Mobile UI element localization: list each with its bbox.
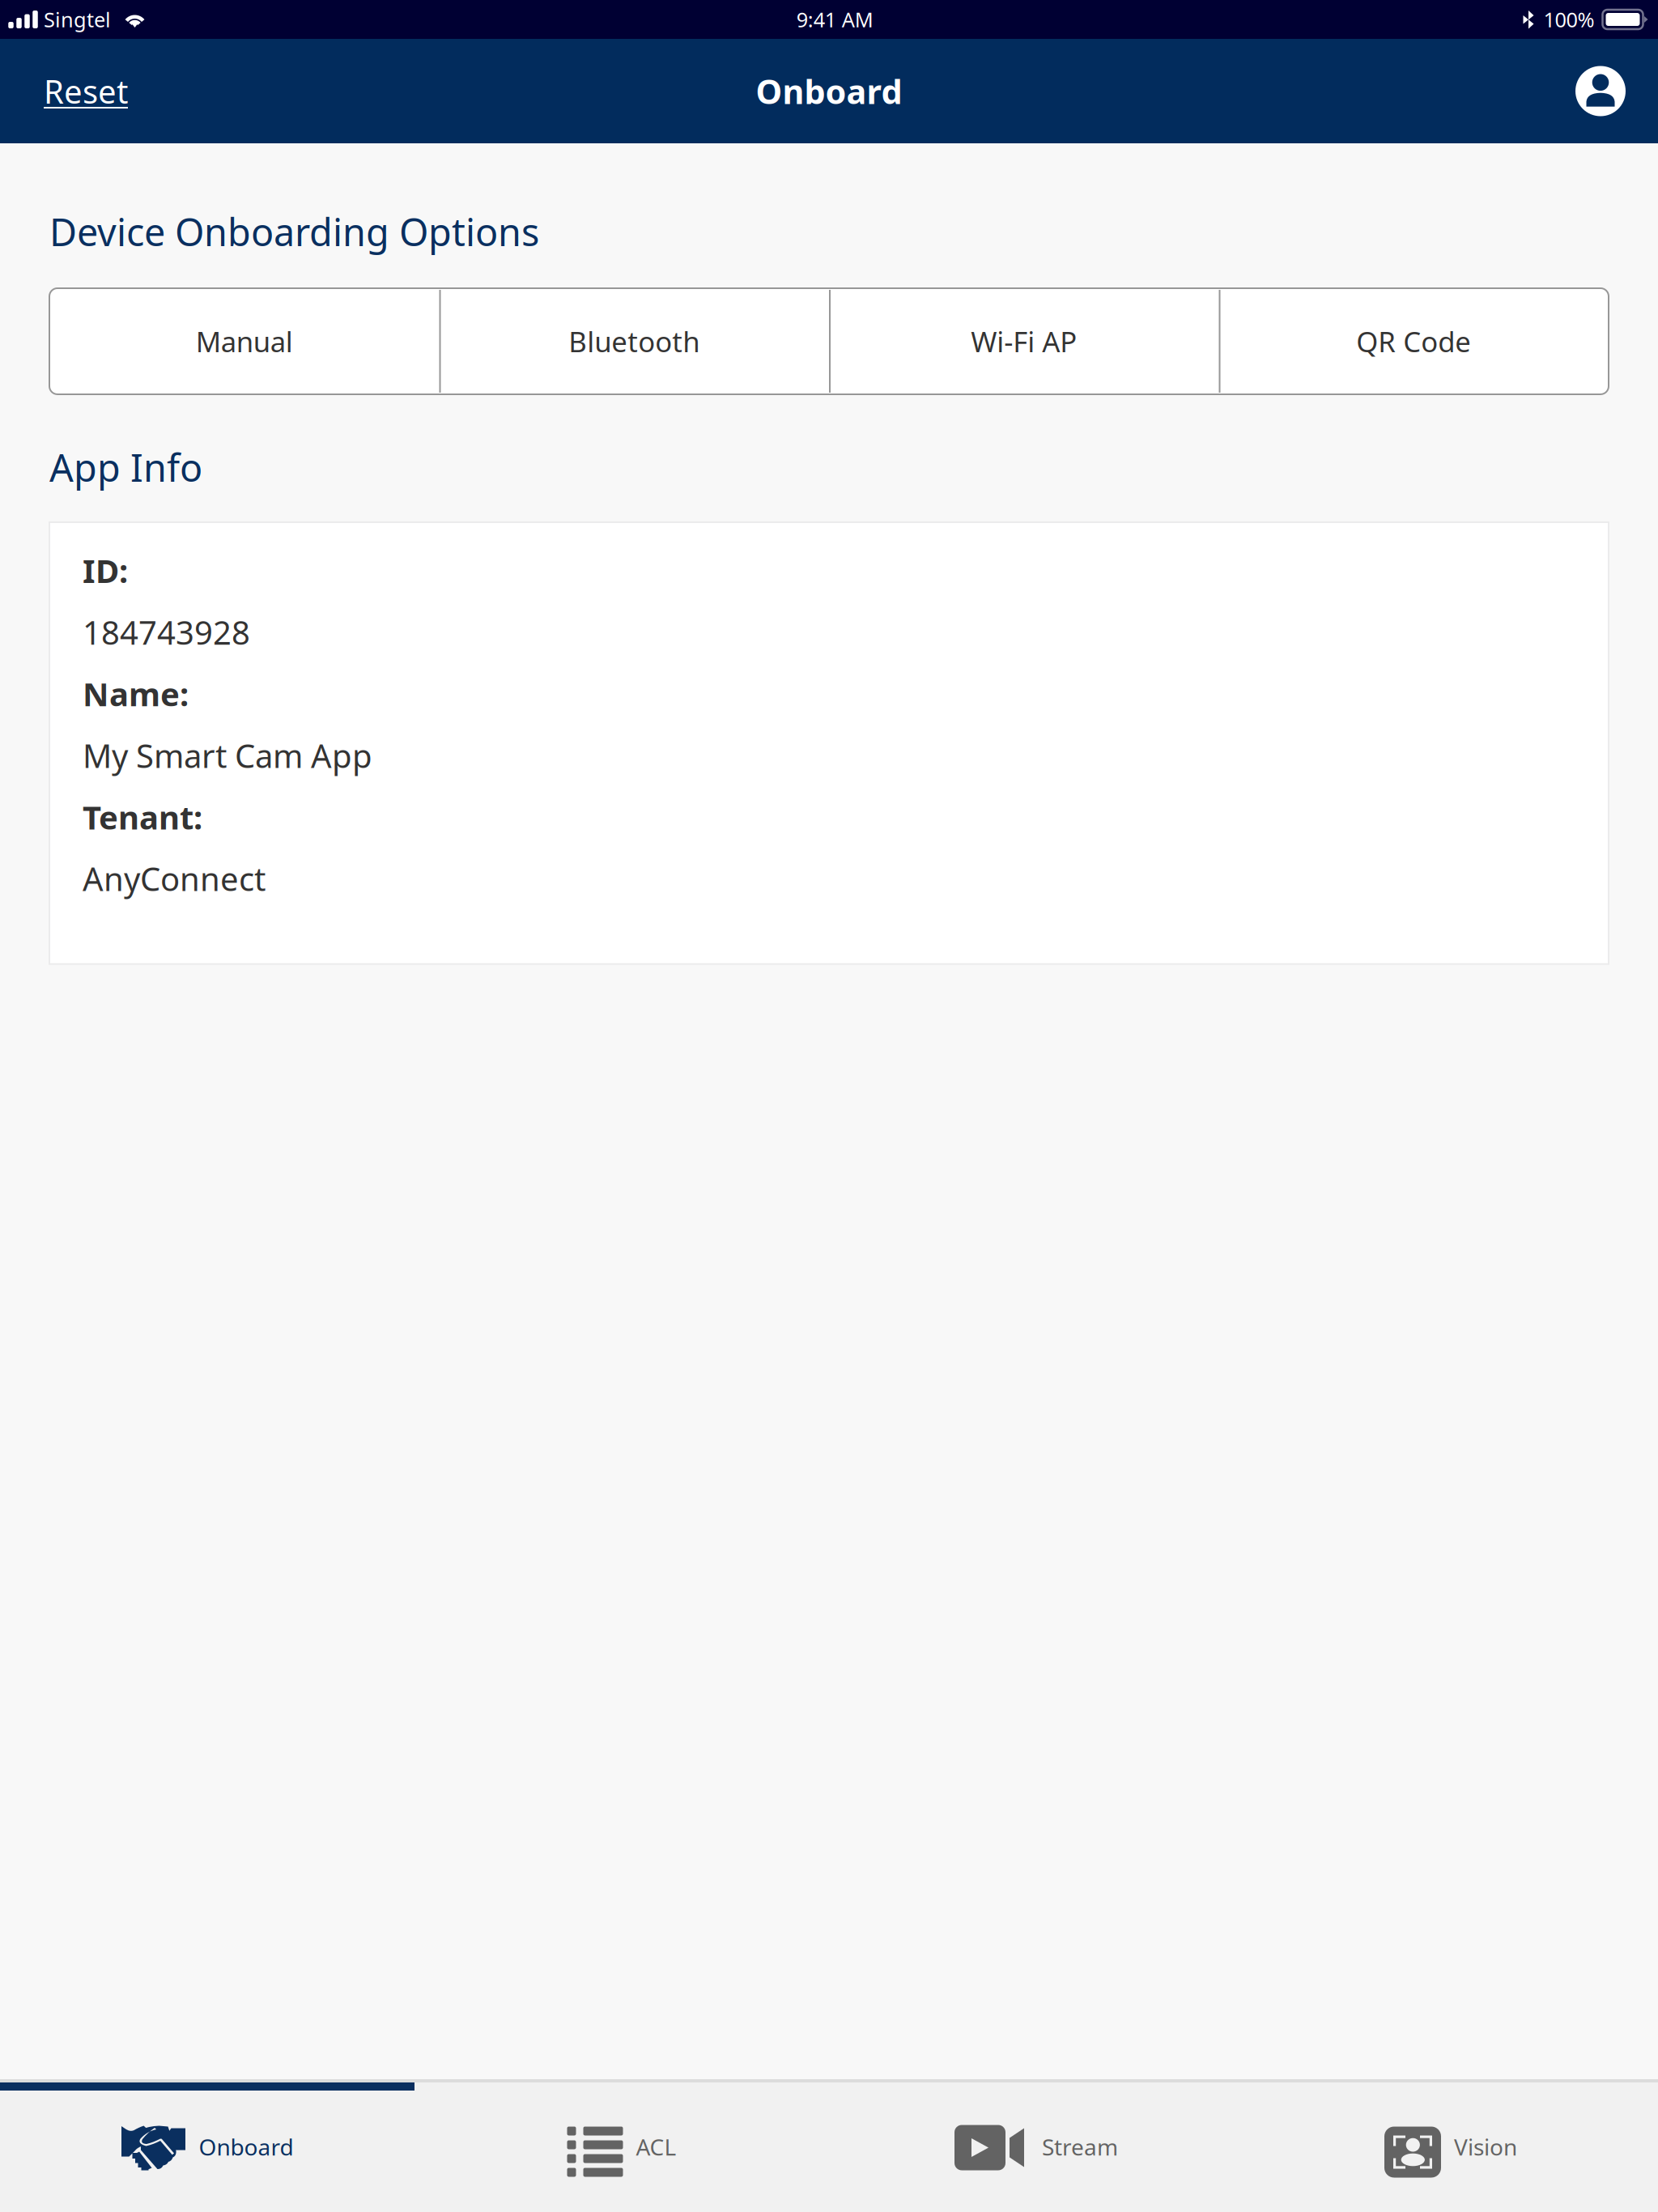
staticText: Manual [196, 323, 293, 360]
staticText: 9:41 AM [796, 6, 873, 33]
staticText: Reset [44, 70, 128, 113]
button[interactable]: Reset [32, 52, 139, 130]
staticText: ACL [636, 2132, 676, 2162]
staticText: AnyConnect [83, 857, 266, 900]
staticText: My Smart Cam App [83, 734, 372, 777]
staticText: Stream [1042, 2132, 1118, 2162]
button[interactable]: Bluetooth [439, 290, 829, 393]
button[interactable]: Vision [1243, 2091, 1658, 2212]
staticText: Vision [1454, 2132, 1517, 2162]
staticText: 100% [1543, 6, 1594, 33]
button[interactable]: Account [1569, 66, 1632, 116]
staticText: Wi-Fi AP [971, 323, 1077, 360]
staticText: Tenant: [83, 795, 202, 838]
staticText: Singtel [44, 6, 111, 33]
staticText: Device Onboarding Options [49, 206, 539, 257]
staticText: Name: [83, 672, 189, 715]
staticText: 184743928 [83, 611, 250, 654]
staticText: ID: [83, 549, 128, 592]
staticText: Onboard [756, 69, 902, 113]
button[interactable]: Wi-Fi AP [829, 290, 1219, 393]
button[interactable]: QR Code [1219, 290, 1609, 393]
button[interactable]: Manual [49, 290, 439, 393]
button[interactable]: ACL [414, 2091, 829, 2212]
staticText: QR Code [1356, 323, 1471, 360]
button[interactable]: Onboard [0, 2091, 414, 2212]
staticText: Bluetooth [568, 323, 700, 360]
button[interactable]: Stream [829, 2091, 1243, 2212]
staticText: App Info [49, 442, 202, 492]
staticText: Onboard [199, 2132, 293, 2162]
